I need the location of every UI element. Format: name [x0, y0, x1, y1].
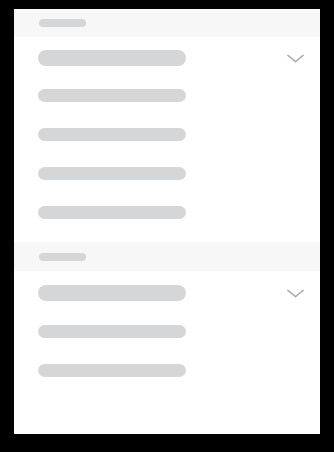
button[interactable]	[14, 325, 320, 338]
button[interactable]: Expand section	[275, 273, 315, 313]
button[interactable]: Expand section	[14, 271, 320, 314]
button[interactable]	[14, 89, 320, 102]
button[interactable]	[14, 242, 320, 271]
button[interactable]: Expand section	[14, 37, 320, 78]
button[interactable]	[14, 128, 320, 141]
button[interactable]	[14, 364, 320, 377]
button[interactable]	[14, 167, 320, 180]
button[interactable]: Expand section	[275, 38, 315, 78]
button[interactable]	[14, 9, 320, 37]
button[interactable]	[14, 206, 320, 219]
